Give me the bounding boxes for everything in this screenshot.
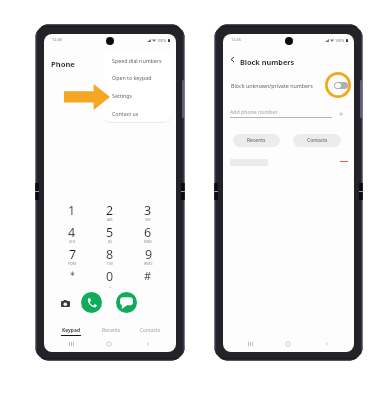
button[interactable]: 4 bbox=[53, 224, 91, 246]
button[interactable]: Speed dial numbers bbox=[103, 52, 171, 69]
button[interactable]: 3 bbox=[129, 202, 167, 224]
button[interactable]: 5 bbox=[91, 224, 129, 246]
staticText: MNO bbox=[144, 240, 152, 244]
staticText: Recents bbox=[102, 327, 121, 334]
staticText: Block unknown/private numbers bbox=[231, 82, 313, 89]
button[interactable]: Home bbox=[104, 339, 114, 349]
button[interactable]: Back bbox=[143, 339, 153, 349]
button[interactable]: 2 bbox=[91, 202, 129, 224]
staticText: TUV bbox=[107, 262, 114, 266]
staticText: Open to keypad bbox=[112, 74, 152, 81]
staticText: WXYZ bbox=[144, 262, 153, 266]
staticText: 12:45 bbox=[52, 37, 62, 42]
button[interactable]: Recent apps bbox=[66, 339, 76, 349]
button[interactable]: # bbox=[129, 268, 167, 290]
staticText: 7 bbox=[69, 246, 77, 263]
staticText: Keypad bbox=[62, 327, 80, 334]
staticText: 5 bbox=[106, 224, 114, 241]
staticText: 100% bbox=[157, 38, 167, 43]
staticText: ＊ bbox=[67, 268, 78, 282]
button[interactable]: Keypad bbox=[57, 327, 85, 336]
staticText: DEF bbox=[145, 218, 151, 222]
button[interactable]: ＊ bbox=[53, 268, 91, 290]
button[interactable]: Message bbox=[116, 292, 137, 313]
button[interactable]: 9 bbox=[129, 246, 167, 268]
button[interactable]: Recent apps bbox=[245, 339, 255, 349]
staticText: 6 bbox=[144, 224, 152, 241]
button[interactable]: Phone bbox=[51, 59, 75, 69]
staticText: Settings bbox=[112, 92, 133, 99]
staticText: ABC bbox=[107, 218, 114, 222]
button[interactable]: Camera bbox=[61, 299, 70, 308]
button[interactable]: Call bbox=[81, 292, 102, 313]
staticText: # bbox=[144, 268, 152, 283]
staticText: Contacts bbox=[307, 137, 328, 144]
staticText: 12:45 bbox=[231, 37, 241, 42]
button[interactable]: Block unknown/private numbers bbox=[231, 77, 348, 94]
button[interactable]: 8 bbox=[91, 246, 129, 268]
button[interactable]: 0 bbox=[91, 268, 129, 290]
button[interactable]: 7 bbox=[53, 246, 91, 268]
button[interactable]: Home bbox=[283, 339, 293, 349]
staticText: JKL bbox=[108, 240, 113, 244]
staticText: 3 bbox=[144, 202, 152, 219]
staticText: Contacts bbox=[140, 327, 161, 334]
staticText: Speed dial numbers bbox=[112, 57, 162, 64]
button[interactable]: Recents bbox=[97, 327, 125, 334]
button[interactable]: Contact us bbox=[103, 104, 171, 122]
staticText: 1 bbox=[68, 202, 76, 219]
staticText: Block numbers bbox=[240, 57, 295, 67]
button[interactable]: Settings bbox=[103, 86, 171, 104]
button[interactable]: Add contact bbox=[336, 109, 345, 118]
button[interactable]: Open to keypad bbox=[103, 69, 171, 86]
staticText: + bbox=[109, 284, 112, 289]
button[interactable]: Back bbox=[229, 56, 236, 63]
staticText: Contact us bbox=[112, 110, 139, 117]
staticText: 100% bbox=[335, 38, 345, 43]
button[interactable]: Contacts bbox=[293, 134, 341, 147]
staticText: Add phone number bbox=[230, 108, 278, 115]
staticText: PQRS bbox=[68, 262, 77, 266]
button[interactable]: 6 bbox=[129, 224, 167, 246]
staticText: 9 bbox=[145, 246, 153, 263]
staticText: 4 bbox=[68, 224, 76, 241]
button[interactable]: Contacts bbox=[136, 327, 164, 334]
button[interactable]: Recents bbox=[233, 134, 280, 147]
staticText: 8 bbox=[106, 246, 114, 263]
staticText: Recents bbox=[247, 137, 266, 144]
staticText: GHI bbox=[69, 240, 75, 244]
staticText: 0 bbox=[106, 268, 114, 285]
button[interactable]: 1 bbox=[53, 202, 91, 224]
staticText: 2 bbox=[106, 202, 114, 219]
button[interactable]: Back bbox=[322, 339, 332, 349]
